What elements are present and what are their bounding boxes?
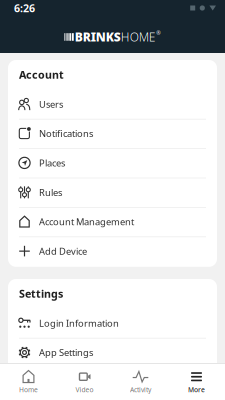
staticText: Users: [39, 98, 63, 110]
staticText: HOME: [121, 29, 156, 45]
staticText: Account: [19, 68, 64, 82]
staticText: ®: [156, 29, 160, 36]
staticText: Add Device: [39, 245, 87, 257]
button[interactable]: Add Device: [8, 236, 217, 266]
staticText: Places: [39, 157, 65, 169]
staticText: Settings: [19, 287, 63, 301]
staticText: Home: [19, 385, 38, 394]
button[interactable]: Rules: [8, 178, 217, 207]
button[interactable]: Notifications: [8, 119, 217, 148]
button[interactable]: Home: [0, 365, 56, 399]
staticText: Activity: [130, 385, 151, 394]
button[interactable]: Activity: [112, 365, 168, 399]
button[interactable]: Login Information: [8, 308, 217, 338]
staticText: BRINKS: [75, 29, 121, 45]
staticText: 6:26: [14, 1, 35, 15]
staticText: Video: [75, 385, 93, 394]
button[interactable]: App Settings: [8, 338, 217, 367]
staticText: Login Information: [39, 317, 119, 329]
staticText: More: [188, 385, 205, 394]
button[interactable]: More: [168, 365, 224, 399]
button[interactable]: Video: [56, 365, 112, 399]
staticText: Account Management: [39, 215, 134, 228]
staticText: App Settings: [39, 346, 93, 359]
staticText: Rules: [39, 186, 62, 198]
staticText: Notifications: [39, 127, 93, 140]
button[interactable]: Users: [8, 89, 217, 119]
button[interactable]: Account Management: [8, 207, 217, 236]
button[interactable]: Places: [8, 148, 217, 178]
